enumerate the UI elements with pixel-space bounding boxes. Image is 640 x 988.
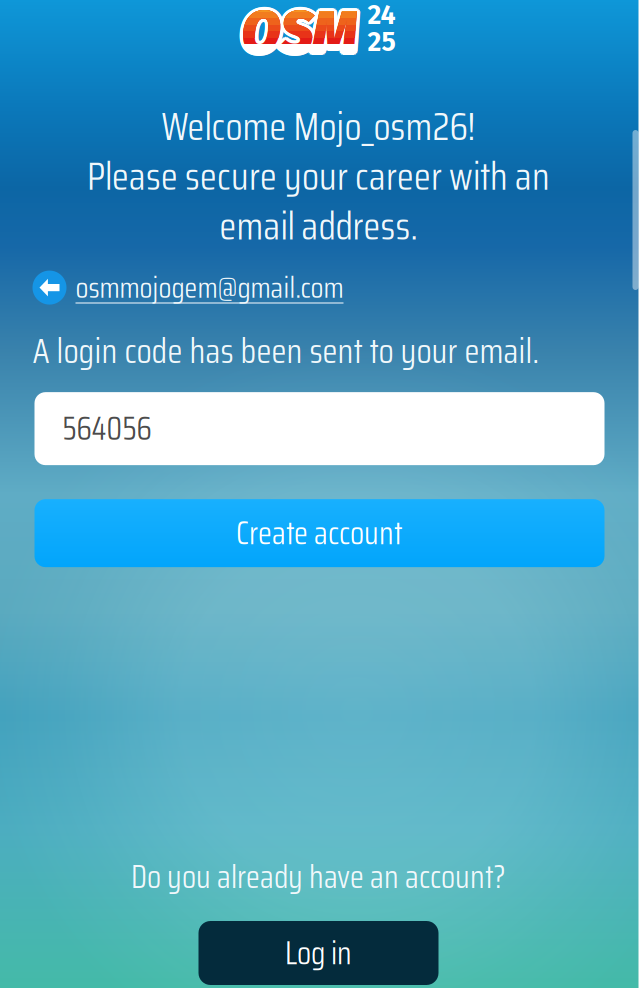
staticText: Do you already have an account? [131, 852, 506, 902]
staticText: OSM [241, 0, 357, 67]
staticText: OSM [241, 0, 357, 67]
staticText: Log in [285, 928, 352, 978]
staticText: OSM [238, 0, 354, 67]
staticText: Welcome Mojo_osm26! [161, 96, 475, 157]
staticText: email address. [219, 196, 417, 257]
staticText: OSM [243, 0, 359, 64]
staticText: OSM [243, 1, 359, 70]
staticText: OSM [241, 0, 357, 67]
staticText: OSM [244, 0, 360, 68]
staticText: OSM [239, 0, 355, 65]
staticText: 25 [367, 26, 395, 58]
staticText: OSM [241, 0, 357, 67]
button[interactable]: osmmojogem@gmail.com [32, 268, 592, 308]
staticText: Create account [236, 508, 403, 558]
staticText: A login code has been sent to your email… [32, 324, 538, 378]
staticText: OSM [241, 0, 357, 67]
staticText: Please secure your career with an [87, 146, 550, 207]
staticText: OSM [240, 1, 356, 70]
staticText: OSM [240, 0, 356, 64]
staticText: osmmojogem@gmail.com [75, 264, 343, 311]
staticText: OSM [241, 0, 357, 67]
staticText: OSM [239, 0, 355, 68]
button[interactable]: Create account [34, 499, 604, 567]
staticText: OSM [241, 1, 357, 70]
staticText: OSM [244, 0, 360, 65]
staticText: OSM [241, 0, 357, 67]
staticText: 24 [367, 0, 395, 31]
staticText: OSM [241, 0, 357, 63]
button[interactable]: Log in [198, 921, 438, 985]
staticText: OSM [245, 0, 361, 67]
staticText: 564056 [62, 403, 151, 454]
